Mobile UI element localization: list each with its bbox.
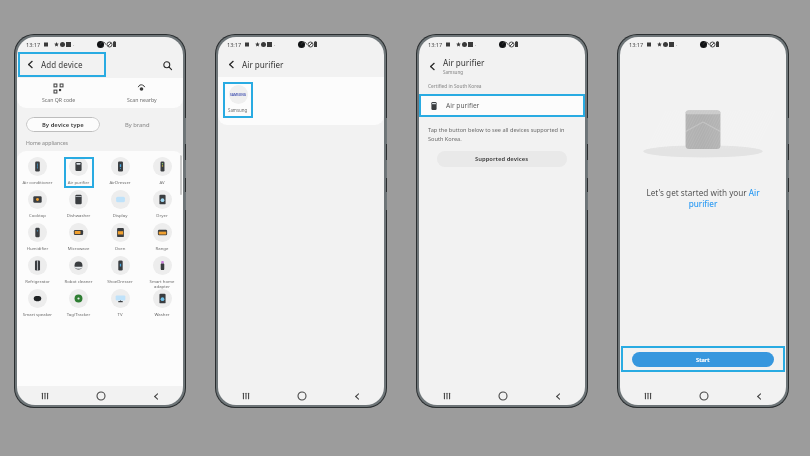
staticText: Oven	[100, 245, 140, 251]
staticText: Smart speaker	[18, 311, 57, 317]
staticText: By brand	[125, 121, 150, 129]
button[interactable]: Humidifier	[17, 223, 58, 256]
staticText: ·	[676, 41, 678, 48]
button[interactable]: Cooktop	[17, 190, 58, 223]
staticText: Tag/Tracker	[59, 311, 98, 317]
staticText: ·	[274, 41, 276, 48]
button[interactable]: Display	[99, 190, 141, 223]
staticText: Air purifier	[446, 101, 480, 110]
button[interactable]: Air conditioner	[17, 157, 58, 190]
button[interactable]: Dryer	[141, 190, 183, 223]
button[interactable]: Home	[92, 387, 110, 405]
staticText: Microwave	[59, 245, 98, 251]
button[interactable]: Air purifier	[419, 51, 585, 81]
button[interactable]: Home	[494, 387, 512, 405]
button[interactable]: Scan nearby	[100, 78, 183, 108]
button[interactable]: AV	[141, 157, 183, 190]
button[interactable]: Scan QR code	[17, 78, 100, 108]
staticText: ShoeDresser	[100, 278, 140, 284]
button[interactable]: Smart speaker	[17, 289, 58, 322]
button[interactable]: Range	[141, 223, 183, 256]
staticText: Scan QR code	[42, 96, 76, 103]
staticText: Scan nearby	[127, 96, 157, 103]
button[interactable]: Search	[155, 53, 179, 77]
button[interactable]: By device type	[26, 117, 100, 132]
button[interactable]: SAMSUNG	[223, 82, 253, 118]
staticText: By device type	[42, 121, 84, 129]
staticText: Humidifier	[18, 245, 57, 251]
staticText: Samsung	[228, 107, 248, 113]
button[interactable]: Air purifier	[58, 157, 99, 190]
button[interactable]: AirDresser	[99, 157, 141, 190]
button[interactable]: ShoeDresser	[99, 256, 141, 289]
button[interactable]: Start	[632, 352, 774, 367]
button[interactable]: Recents	[639, 387, 657, 405]
staticText: Tap the button below to see all devices …	[428, 126, 576, 142]
staticText: AirDresser	[100, 179, 140, 185]
button[interactable]: Dishwasher	[58, 190, 99, 223]
staticText: Let's get started with your Air purifier	[642, 187, 764, 209]
staticText: 13:17	[227, 41, 242, 48]
staticText: Robot cleaner	[59, 278, 98, 284]
staticText: ·	[73, 41, 75, 48]
staticText: AV	[142, 179, 182, 185]
staticText: Dishwasher	[59, 212, 98, 218]
staticText: 13:17	[428, 41, 443, 48]
button[interactable]: Oven	[99, 223, 141, 256]
button[interactable]: Air purifier	[218, 51, 384, 77]
staticText: Smart home adapter	[142, 278, 182, 289]
staticText: Air purifier	[59, 179, 98, 185]
button[interactable]: TV	[99, 289, 141, 322]
staticText: 13:17	[26, 41, 41, 48]
button[interactable]: Back	[750, 387, 768, 405]
staticText: SAMSUNG	[230, 93, 247, 97]
staticText: Washer	[142, 311, 182, 317]
staticText: Air purifier	[443, 57, 485, 68]
staticText: Add device	[41, 59, 83, 70]
staticText: Certified in South Korea	[428, 83, 482, 90]
button[interactable]: Back	[549, 387, 567, 405]
button[interactable]: Recents	[237, 387, 255, 405]
button[interactable]: Home	[293, 387, 311, 405]
button[interactable]: Recents	[438, 387, 456, 405]
button[interactable]: Robot cleaner	[58, 256, 99, 289]
staticText: TV	[100, 311, 140, 317]
button[interactable]: Back	[147, 387, 165, 405]
button[interactable]: Smart home adapter	[141, 256, 183, 289]
staticText: Supported devices	[475, 155, 529, 163]
staticText: Samsung	[443, 69, 464, 75]
button[interactable]: Back	[348, 387, 366, 405]
button[interactable]: Add device	[17, 51, 103, 78]
staticText: Air conditioner	[18, 179, 57, 185]
staticText: 13:17	[629, 41, 644, 48]
button[interactable]: By brand	[100, 117, 174, 132]
button[interactable]: Washer	[141, 289, 183, 322]
button[interactable]: Supported devices	[437, 151, 567, 167]
button[interactable]: Refrigerator	[17, 256, 58, 289]
button[interactable]: Recents	[36, 387, 54, 405]
staticText: Air purifier	[242, 59, 284, 70]
button[interactable]: Air purifier	[419, 94, 585, 117]
button[interactable]: Microwave	[58, 223, 99, 256]
button[interactable]: Tag/Tracker	[58, 289, 99, 322]
staticText: Start	[696, 356, 710, 364]
staticText: ·	[475, 41, 477, 48]
staticText: Display	[100, 212, 140, 218]
staticText: Cooktop	[18, 212, 57, 218]
staticText: Range	[142, 245, 182, 251]
staticText: Dryer	[142, 212, 182, 218]
staticText: Home appliances	[26, 139, 69, 146]
button[interactable]: Home	[695, 387, 713, 405]
staticText: Refrigerator	[18, 278, 57, 284]
